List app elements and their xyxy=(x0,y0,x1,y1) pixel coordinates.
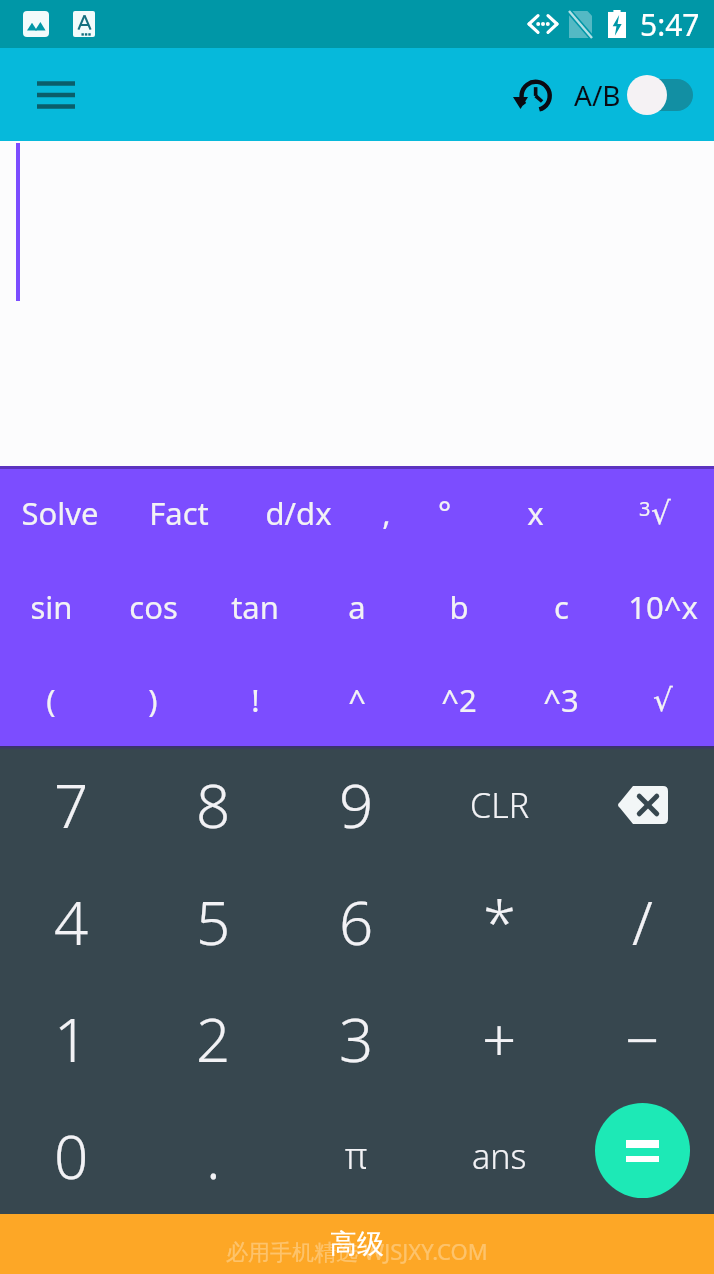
button[interactable]: √ xyxy=(612,653,714,746)
staticText: 6 xyxy=(339,881,374,963)
staticText: 3 xyxy=(339,998,374,1080)
staticText: π xyxy=(345,1131,368,1180)
button[interactable]: A/B toggle xyxy=(627,71,693,119)
button[interactable]: ! xyxy=(204,653,306,746)
button[interactable]: sin xyxy=(0,560,102,653)
button[interactable]: ^3 xyxy=(510,653,612,746)
button[interactable]: 8 xyxy=(142,746,285,863)
button[interactable]: History xyxy=(511,69,572,121)
button[interactable]: 6 xyxy=(285,863,428,980)
staticText: ans xyxy=(472,1133,527,1179)
staticText: ^2 xyxy=(441,679,477,721)
button[interactable]: ° xyxy=(415,466,475,560)
staticText: 5 xyxy=(196,881,231,963)
staticText: 高级 xyxy=(330,1227,384,1261)
button[interactable]: + xyxy=(428,980,571,1097)
staticText: / xyxy=(632,881,653,963)
staticText: √ xyxy=(653,682,673,718)
button[interactable]: 1 xyxy=(0,980,142,1097)
button[interactable]: b xyxy=(408,560,510,653)
staticText: 5:47 xyxy=(640,4,700,45)
button[interactable]: Solve xyxy=(0,466,119,560)
staticText: 4 xyxy=(54,881,89,963)
button[interactable]: ^ xyxy=(306,653,408,746)
staticText: x xyxy=(527,492,544,534)
button[interactable]: ( xyxy=(0,653,102,746)
staticText: . xyxy=(206,1115,221,1197)
staticText: 10^x xyxy=(628,586,698,628)
staticText: cos xyxy=(129,586,178,628)
staticText: ° xyxy=(438,491,452,533)
button[interactable]: d/dx xyxy=(239,466,357,560)
button[interactable]: a xyxy=(306,560,408,653)
staticText: ^3 xyxy=(543,679,579,721)
button[interactable]: 2 xyxy=(142,980,285,1097)
button[interactable] xyxy=(571,1097,714,1214)
staticText: b xyxy=(449,586,469,628)
button[interactable]: Equals xyxy=(595,1103,690,1198)
other: Backspace xyxy=(618,786,668,824)
button[interactable]: Backspace xyxy=(571,746,714,863)
staticText: A/B xyxy=(574,76,621,114)
button[interactable]: . xyxy=(142,1097,285,1214)
button[interactable]: / xyxy=(571,863,714,980)
button[interactable]: 3 xyxy=(285,980,428,1097)
staticText: 7 xyxy=(54,764,89,846)
button[interactable]: π xyxy=(285,1097,428,1214)
staticText: c xyxy=(554,586,569,628)
button[interactable]: tan xyxy=(204,560,306,653)
button[interactable]: c xyxy=(510,560,612,653)
staticText: d/dx xyxy=(265,492,332,534)
button[interactable]: 7 xyxy=(0,746,142,863)
button[interactable]: , xyxy=(357,466,415,560)
staticText: 0 xyxy=(54,1115,89,1197)
button[interactable]: ^2 xyxy=(408,653,510,746)
staticText: CLR xyxy=(470,782,530,828)
staticText: 1 xyxy=(54,998,89,1080)
staticText: ^ xyxy=(348,679,366,721)
staticText: Solve xyxy=(21,492,99,534)
button[interactable]: Fact xyxy=(119,466,239,560)
button[interactable]: x xyxy=(475,466,595,560)
staticText: , xyxy=(382,492,391,534)
button[interactable]: 10^x xyxy=(612,560,714,653)
button[interactable]: 4 xyxy=(0,863,142,980)
button[interactable]: 3 xyxy=(595,466,714,560)
button[interactable]: Menu xyxy=(28,67,84,123)
staticText: 3 xyxy=(639,495,651,522)
staticText: tan xyxy=(231,586,279,628)
button[interactable]: * xyxy=(428,863,571,980)
button[interactable]: cos xyxy=(102,560,204,653)
staticText: − xyxy=(625,998,660,1080)
staticText: a xyxy=(348,586,366,628)
button[interactable]: 5 xyxy=(142,863,285,980)
staticText: 9 xyxy=(339,764,374,846)
staticText: 8 xyxy=(196,764,231,846)
staticText: Fact xyxy=(149,492,209,534)
button[interactable]: CLR xyxy=(428,746,571,863)
staticText: √ xyxy=(651,495,671,531)
button[interactable]: ans xyxy=(428,1097,571,1214)
button[interactable]: − xyxy=(571,980,714,1097)
button[interactable]: ) xyxy=(102,653,204,746)
staticText: ! xyxy=(251,679,260,721)
staticText: sin xyxy=(30,586,73,628)
staticText: * xyxy=(483,881,517,963)
staticText: 必用手机精选 WJSJXY.COM xyxy=(226,1236,488,1266)
staticText: ( xyxy=(46,679,56,721)
button[interactable]: 9 xyxy=(285,746,428,863)
button[interactable]: 0 xyxy=(0,1097,142,1214)
staticText: ) xyxy=(148,679,158,721)
staticText: + xyxy=(482,998,517,1080)
staticText: 2 xyxy=(196,998,231,1080)
